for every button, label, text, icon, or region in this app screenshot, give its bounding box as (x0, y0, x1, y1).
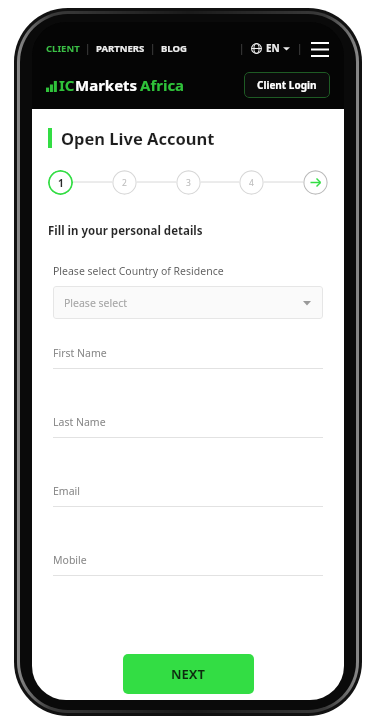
button[interactable]: BLOG (161, 42, 187, 55)
staticText: 1 (58, 176, 64, 190)
staticText: Africa (140, 75, 185, 95)
button[interactable]: Email (53, 484, 323, 507)
staticText: First Name (53, 346, 107, 360)
button[interactable]: Client Login (244, 72, 330, 98)
button[interactable]: Language EN (251, 41, 290, 55)
button[interactable]: 1 (48, 170, 73, 195)
staticText: IC (59, 75, 75, 95)
staticText: Please select Country of Residence (53, 264, 224, 278)
staticText: | (297, 41, 303, 55)
staticText: 3 (186, 177, 191, 189)
staticText: Fill in your personal details (48, 223, 203, 239)
staticText: Open Live Account (61, 127, 215, 149)
staticText: Please select (64, 296, 127, 310)
staticText: 2 (122, 177, 127, 189)
staticText: NEXT (171, 665, 206, 683)
staticText: | (150, 41, 156, 55)
button[interactable]: Next step (303, 170, 328, 195)
button[interactable]: 4 (239, 170, 264, 195)
staticText: | (85, 41, 91, 55)
staticText: Email (53, 484, 80, 498)
button[interactable]: First Name (53, 346, 323, 369)
staticText: Client Login (257, 78, 317, 92)
button[interactable]: NEXT (123, 654, 254, 694)
button[interactable]: PARTNERS (96, 42, 145, 55)
button[interactable]: Menu (310, 40, 330, 56)
staticText: Last Name (53, 415, 106, 429)
button[interactable]: Please select (53, 286, 323, 319)
button[interactable]: Last Name (53, 415, 323, 438)
button[interactable]: IC (46, 75, 185, 95)
staticText: Mobile (53, 553, 87, 567)
button[interactable]: Mobile (53, 553, 323, 576)
button[interactable]: 2 (112, 170, 137, 195)
staticText: | (239, 41, 245, 55)
staticText: 4 (249, 177, 254, 189)
staticText: EN (266, 41, 280, 55)
staticText: Markets (75, 75, 138, 95)
button[interactable]: CLIENT (46, 42, 80, 55)
button[interactable]: 3 (176, 170, 201, 195)
